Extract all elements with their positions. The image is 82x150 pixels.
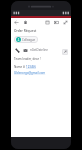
button[interactable]: Delete [22, 19, 29, 26]
staticText: Name # [14, 65, 26, 69]
button[interactable]: More options [62, 19, 69, 26]
staticText: nGetDateline [30, 48, 48, 52]
other: Call [14, 47, 20, 53]
staticText: Order Réquest [14, 29, 37, 33]
staticText: Team leader, dear ! [14, 57, 41, 61]
staticText: 123456 [26, 65, 36, 69]
staticText: Colleague [22, 38, 36, 42]
button[interactable]: 123456 [26, 65, 36, 69]
staticText: Gldenorgo@gmail.com [14, 71, 46, 75]
button[interactable]: Colleague [14, 36, 38, 43]
button[interactable]: Move to folder [53, 19, 60, 26]
button[interactable]: Gldenorgo@gmail.com [14, 71, 46, 75]
button[interactable]: Expand [62, 49, 68, 55]
button[interactable]: Back [13, 19, 20, 26]
button[interactable]: Call [14, 47, 68, 53]
button[interactable]: Archive [44, 19, 51, 26]
other: Email [22, 47, 28, 53]
